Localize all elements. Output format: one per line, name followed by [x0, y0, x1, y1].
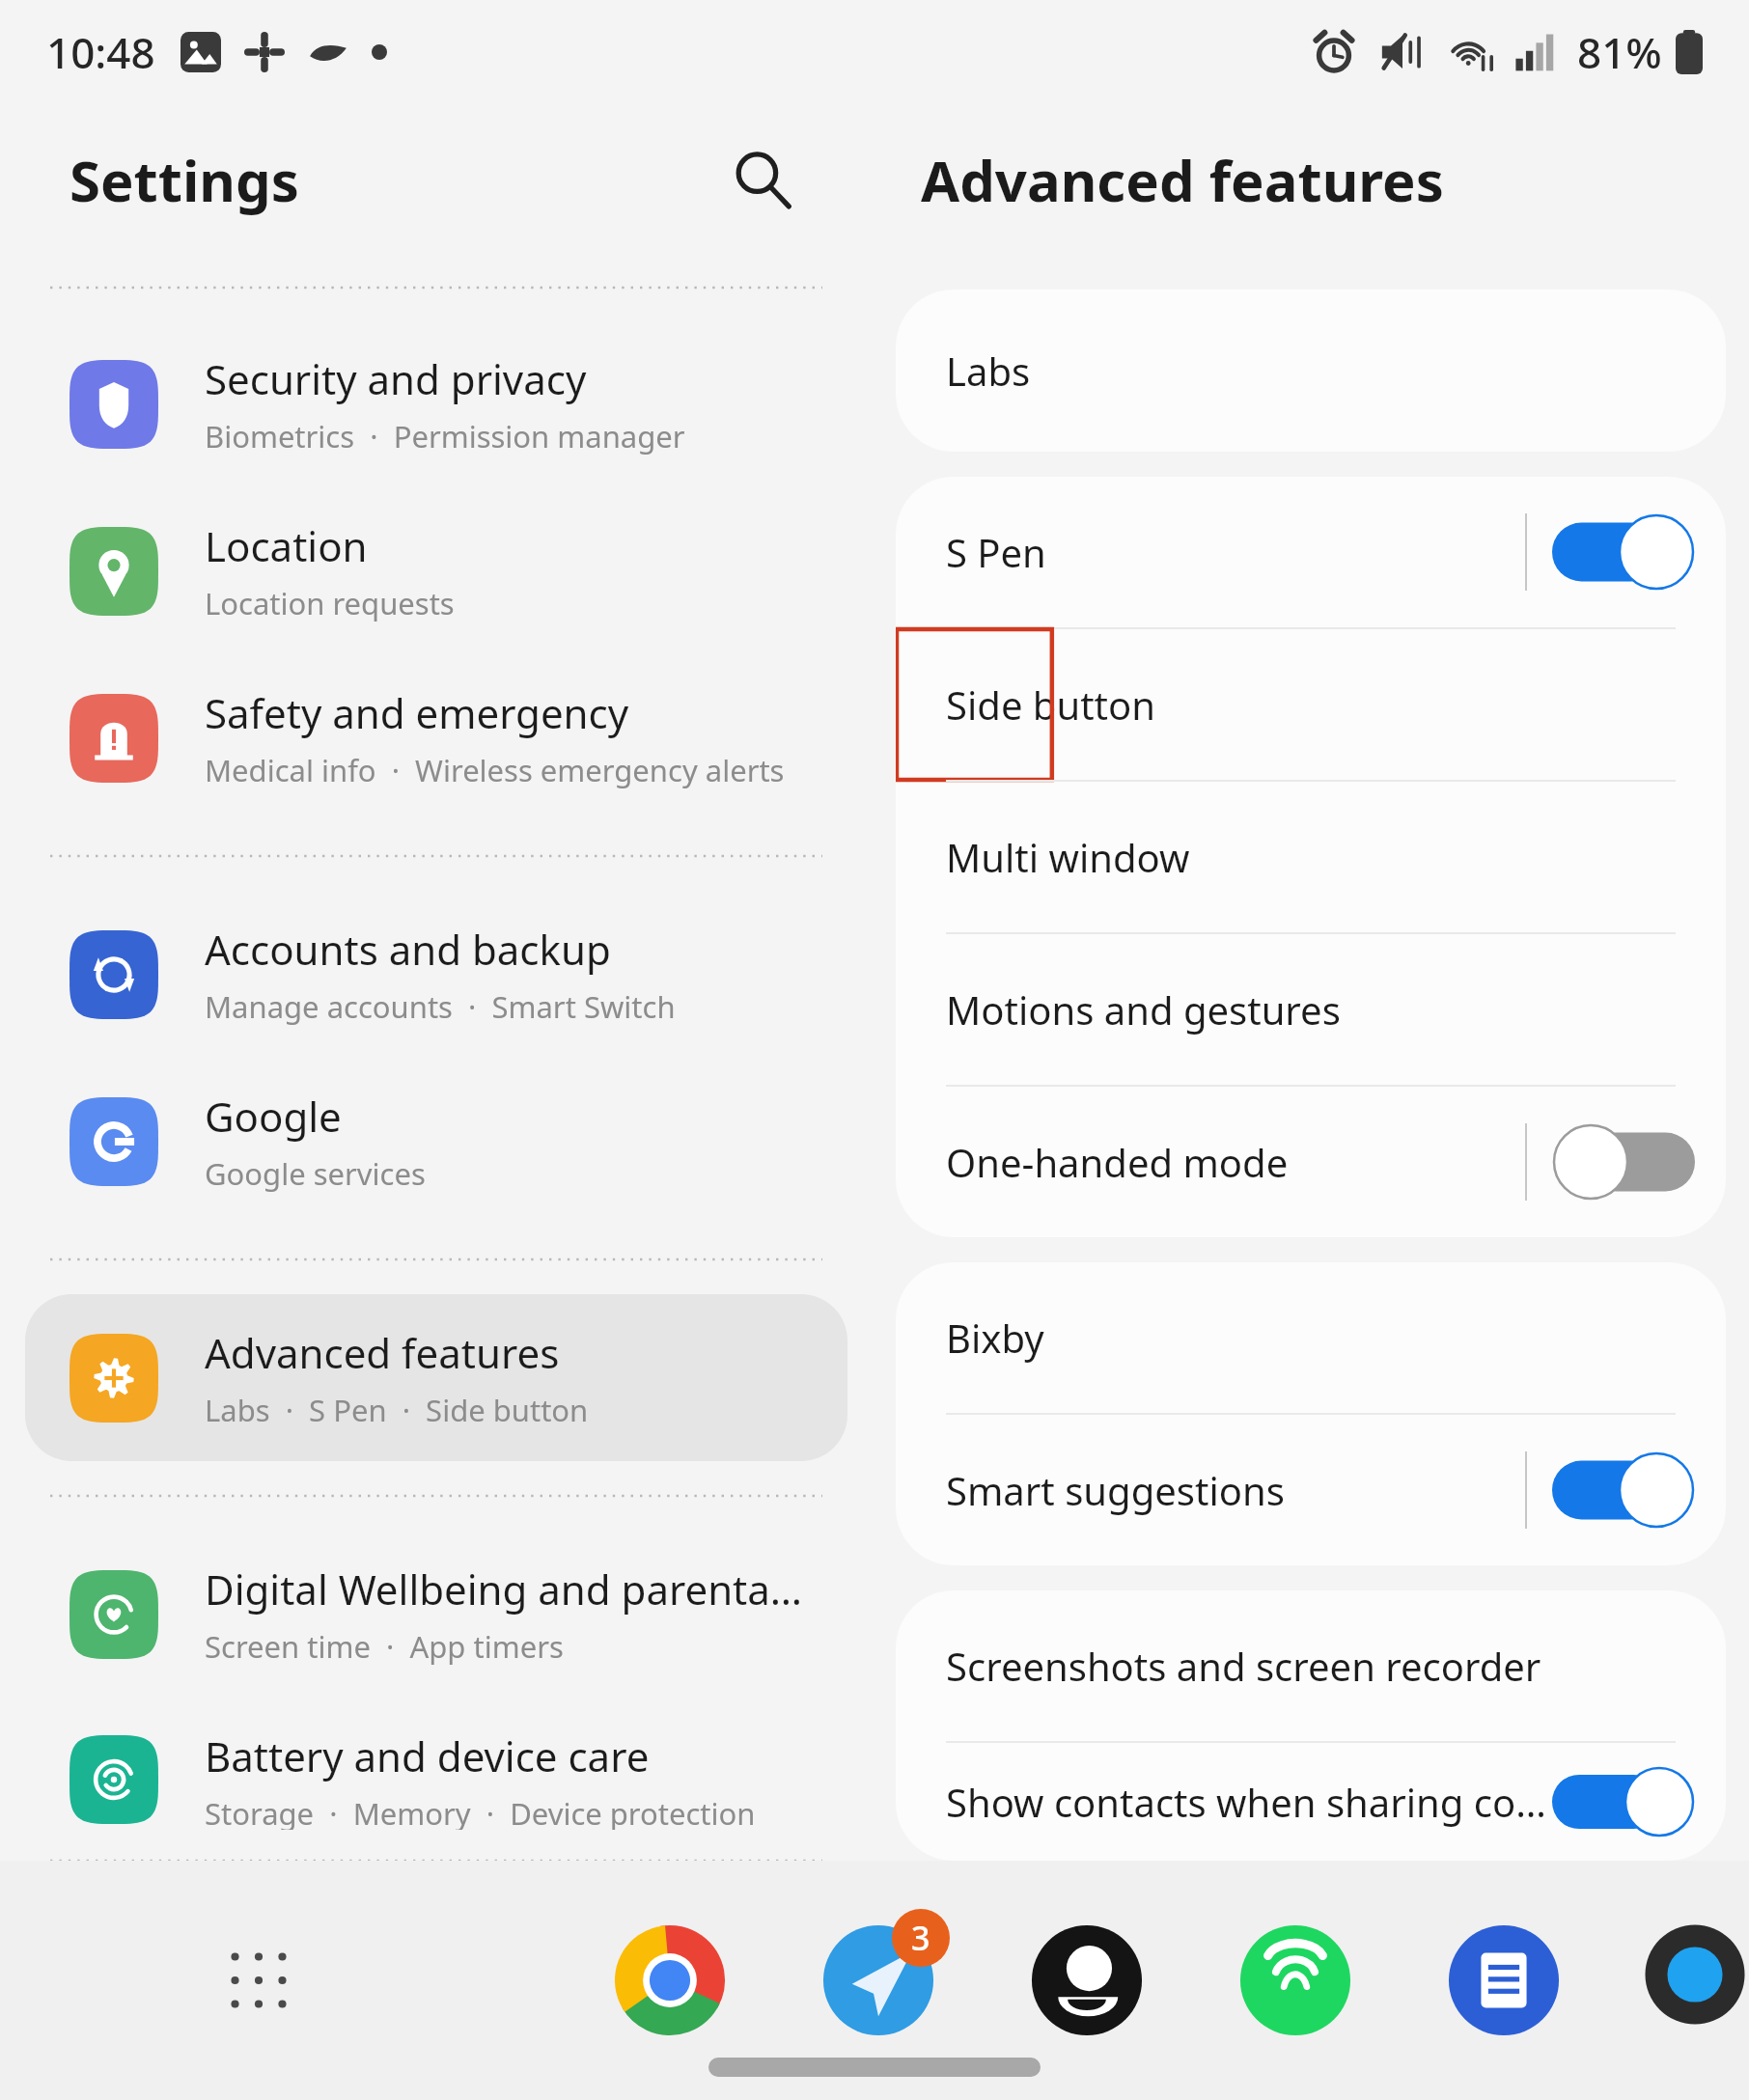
- staticText: Manage accounts · Smart Switch: [205, 986, 676, 1027]
- staticText: Smart suggestions: [946, 1464, 1285, 1516]
- button[interactable]: S Pen toggle: [1552, 513, 1695, 591]
- staticText: Storage · Memory · Device protection: [205, 1793, 756, 1830]
- staticText: Screenshots and screen recorder: [946, 1640, 1541, 1692]
- staticText: Battery and device care: [205, 1728, 650, 1783]
- button[interactable]: Media: [1641, 1909, 1749, 2052]
- staticText: Accounts and backup: [205, 922, 611, 977]
- button[interactable]: Accounts and backup: [25, 891, 847, 1058]
- staticText: Show contacts when sharing content: [946, 1776, 1552, 1828]
- staticText: Multi window: [946, 831, 1190, 883]
- staticText: Digital Wellbeing and parental controls: [205, 1561, 809, 1616]
- staticText: Bixby: [946, 1312, 1044, 1364]
- button[interactable]: Screenshots and screen recorder: [896, 1590, 1726, 1741]
- button[interactable]: Show contacts when sharing content toggl…: [1552, 1766, 1695, 1837]
- staticText: Medical info · Wireless emergency alerts: [205, 750, 785, 790]
- staticText: Safety and emergency: [205, 685, 629, 740]
- staticText: Labs · S Pen · Side button: [205, 1390, 589, 1430]
- button[interactable]: Side button: [896, 629, 1726, 780]
- staticText: Location requests: [205, 583, 455, 623]
- button[interactable]: All apps: [201, 1922, 317, 2038]
- staticText: 3: [911, 1916, 930, 1960]
- staticText: S Pen: [946, 526, 1046, 578]
- button[interactable]: Security and privacy: [25, 320, 847, 487]
- button[interactable]: Digital Wellbeing and parental controls: [25, 1531, 847, 1698]
- button[interactable]: Labs: [896, 290, 1726, 452]
- staticText: Screen time · App timers: [205, 1626, 564, 1667]
- staticText: Advanced features: [205, 1325, 560, 1380]
- staticText: One-handed mode: [946, 1136, 1289, 1188]
- button[interactable]: Bixby: [896, 1262, 1726, 1413]
- staticText: 10:48: [46, 23, 155, 81]
- button[interactable]: Smart suggestions toggle: [1552, 1451, 1695, 1529]
- staticText: Security and privacy: [205, 351, 587, 406]
- button[interactable]: Multi window: [896, 782, 1726, 932]
- staticText: Settings: [69, 142, 299, 218]
- button[interactable]: Advanced features: [25, 1294, 847, 1461]
- button[interactable]: Show contacts when sharing content: [896, 1743, 1726, 1861]
- staticText: 81%: [1577, 23, 1662, 81]
- button[interactable]: Smart suggestions: [896, 1415, 1726, 1565]
- staticText: Google services: [205, 1153, 426, 1194]
- button[interactable]: Location: [25, 487, 847, 654]
- button[interactable]: Search: [714, 131, 811, 228]
- button[interactable]: Spotify: [1224, 1909, 1367, 2052]
- button[interactable]: One-handed mode toggle: [1552, 1123, 1695, 1201]
- button[interactable]: Motions and gestures: [896, 934, 1726, 1085]
- staticText: Advanced features: [921, 142, 1444, 218]
- staticText: Motions and gestures: [946, 983, 1341, 1036]
- button[interactable]: Mail: [807, 1909, 950, 2052]
- staticText: Location: [205, 518, 368, 573]
- staticText: Biometrics · Permission manager: [205, 416, 685, 456]
- staticText: Google: [205, 1089, 342, 1144]
- button[interactable]: S Pen: [896, 477, 1726, 627]
- staticText: Labs: [946, 345, 1031, 397]
- button[interactable]: Battery and device care: [25, 1698, 847, 1861]
- button[interactable]: Google: [25, 1058, 847, 1225]
- button[interactable]: One-handed mode: [896, 1087, 1726, 1237]
- button[interactable]: Steam: [1015, 1909, 1158, 2052]
- staticText: Side button: [946, 678, 1155, 731]
- button[interactable]: Chrome: [598, 1909, 741, 2052]
- button[interactable]: Safety and emergency: [25, 654, 847, 821]
- button[interactable]: Docs: [1432, 1909, 1575, 2052]
